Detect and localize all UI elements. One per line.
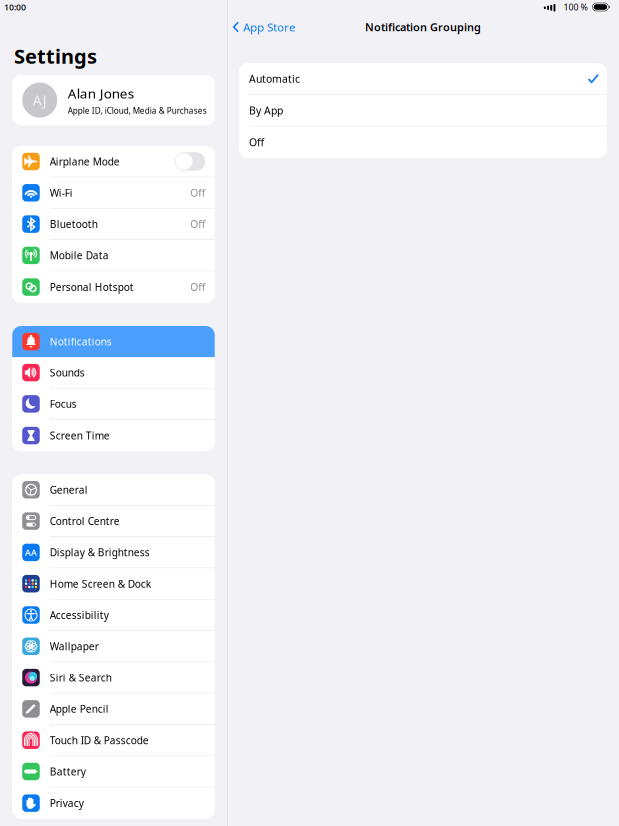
button[interactable]: General: [12, 474, 215, 506]
button[interactable]: Battery: [12, 756, 215, 787]
staticText: Bluetooth: [50, 217, 98, 231]
staticText: 100 %: [563, 1, 587, 13]
button[interactable]: Touch ID & Passcode: [12, 725, 215, 756]
button[interactable]: Accessibility: [12, 600, 215, 631]
button[interactable]: Privacy: [12, 787, 215, 819]
staticText: By App: [249, 103, 283, 117]
button[interactable]: AA: [12, 537, 215, 568]
staticText: Airplane Mode: [50, 155, 120, 168]
staticText: Off: [190, 186, 205, 200]
staticText: Battery: [50, 765, 86, 778]
button[interactable]: Sounds: [12, 357, 215, 389]
staticText: Touch ID & Passcode: [50, 733, 149, 747]
button[interactable]: App Store: [227, 14, 302, 40]
staticText: App Store: [243, 19, 295, 35]
staticText: Mobile Data: [50, 249, 109, 262]
staticText: Automatic: [249, 72, 300, 86]
staticText: Privacy: [50, 796, 84, 810]
button[interactable]: Personal Hotspot: [12, 271, 215, 303]
staticText: Focus: [50, 397, 77, 411]
button[interactable]: Wi-Fi: [12, 177, 215, 209]
button[interactable]: Bluetooth: [12, 209, 215, 240]
staticText: Settings: [14, 43, 97, 69]
button[interactable]: Screen Time: [12, 420, 215, 451]
staticText: Sounds: [50, 366, 85, 379]
staticText: Off: [249, 135, 264, 149]
button[interactable]: Siri & Search: [12, 662, 215, 694]
button[interactable]: Airplane Mode: [12, 146, 215, 177]
staticText: Apple ID, iCloud, Media & Purchases: [68, 105, 207, 116]
button[interactable]: Automatic: [239, 63, 607, 95]
staticText: Wallpaper: [50, 640, 99, 653]
button[interactable]: Wallpaper: [12, 631, 215, 662]
staticText: Personal Hotspot: [50, 280, 134, 294]
staticText: Accessibility: [50, 608, 109, 622]
staticText: Control Centre: [50, 514, 120, 528]
staticText: Apple Pencil: [50, 702, 109, 716]
staticText: AA: [25, 547, 37, 558]
staticText: Screen Time: [50, 429, 110, 442]
button[interactable]: AJ: [12, 75, 215, 125]
button[interactable]: Mobile Data: [12, 240, 215, 271]
button[interactable]: Off: [239, 126, 607, 158]
staticText: Alan Jones: [68, 84, 134, 102]
staticText: Off: [190, 280, 205, 294]
button[interactable]: Control Centre: [12, 506, 215, 537]
button[interactable]: Apple Pencil: [12, 694, 215, 725]
staticText: AJ: [33, 91, 47, 109]
staticText: Display & Brightness: [50, 546, 150, 559]
staticText: 10:00: [4, 1, 26, 13]
button[interactable]: Focus: [12, 389, 215, 420]
button[interactable]: Notifications: [12, 326, 215, 357]
staticText: Wi-Fi: [50, 186, 73, 200]
staticText: Siri & Search: [50, 671, 112, 684]
staticText: Notifications: [50, 335, 112, 348]
staticText: General: [50, 483, 88, 497]
button[interactable]: By App: [239, 95, 607, 126]
staticText: Off: [190, 217, 205, 231]
staticText: Notification Grouping: [365, 20, 481, 34]
button[interactable]: Home Screen & Dock: [12, 568, 215, 600]
staticText: Home Screen & Dock: [50, 577, 151, 590]
